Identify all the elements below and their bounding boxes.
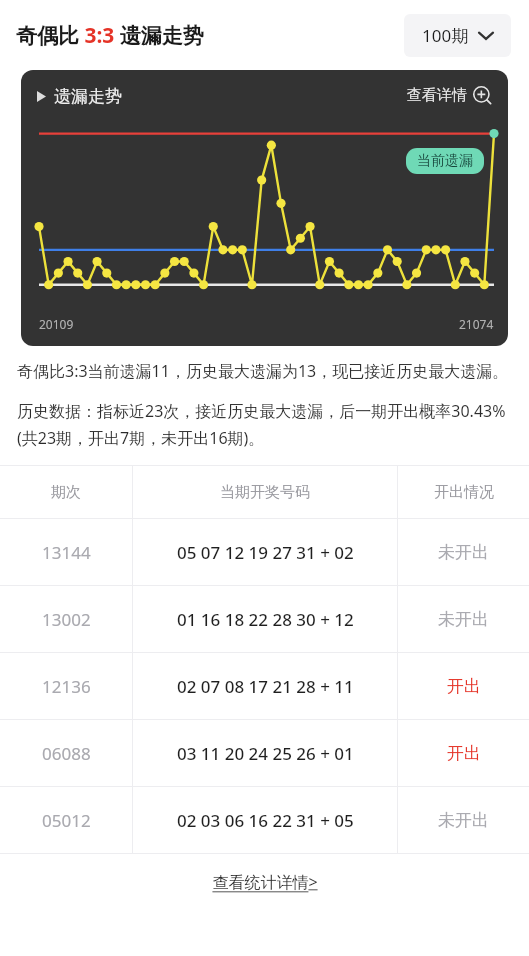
staticText: 查看统计详情>: [212, 871, 318, 893]
staticText: 遗漏走势: [54, 86, 122, 107]
staticText: 05 07 12 19 27 31 + 02: [177, 541, 354, 564]
staticText: 未开出: [438, 609, 489, 630]
staticText: 未开出: [438, 542, 489, 563]
staticText: 13002: [42, 608, 91, 631]
staticText: 奇偶比 3:3 遗漏走势: [16, 21, 204, 50]
button[interactable]: 12136: [0, 653, 529, 719]
staticText: 06088: [42, 742, 91, 765]
button[interactable]: 13144: [0, 519, 529, 585]
staticText: 查看详情: [407, 86, 467, 105]
staticText: 21074: [459, 316, 494, 332]
button[interactable]: 13002: [0, 586, 529, 652]
button[interactable]: 遗漏走势: [21, 70, 508, 346]
staticText: 当期开奖号码: [220, 483, 310, 502]
staticText: 02 07 08 17 21 28 + 11: [177, 675, 354, 698]
button[interactable]: 期次: [0, 466, 529, 518]
staticText: 期次: [51, 483, 81, 502]
button[interactable]: 奇偶比 3:3 遗漏走势: [16, 21, 204, 50]
staticText: 12136: [42, 675, 91, 698]
button[interactable]: 05012: [0, 787, 529, 853]
staticText: 开出: [447, 676, 481, 697]
staticText: 未开出: [438, 810, 489, 831]
staticText: 当前遗漏: [417, 152, 473, 170]
staticText: 开出情况: [434, 483, 494, 502]
staticText: 100期: [422, 24, 469, 47]
button[interactable]: 查看详情: [407, 86, 492, 105]
staticText: 20109: [39, 316, 74, 332]
staticText: 03 11 20 24 25 26 + 01: [177, 742, 354, 765]
button[interactable]: 查看统计详情>: [0, 854, 529, 910]
staticText: 05012: [42, 809, 91, 832]
staticText: 开出: [447, 743, 481, 764]
button[interactable]: 100期: [404, 14, 511, 57]
staticText: 01 16 18 22 28 30 + 12: [177, 608, 354, 631]
staticText: 历史数据：指标近23次，接近历史最大遗漏，后一期开出概率30.43%(共23期，…: [17, 400, 512, 449]
staticText: 13144: [42, 541, 91, 564]
staticText: 02 03 06 16 22 31 + 05: [177, 809, 354, 832]
button[interactable]: 06088: [0, 720, 529, 786]
staticText: 奇偶比3:3当前遗漏11，历史最大遗漏为13，现已接近历史最大遗漏。: [17, 360, 509, 382]
other: 放大查看: [473, 86, 492, 105]
